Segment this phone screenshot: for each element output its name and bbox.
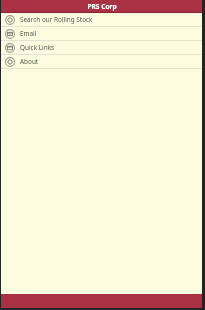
other: Email <box>5 29 15 39</box>
staticText: Email <box>20 29 37 38</box>
staticText: Quick Links <box>20 43 55 52</box>
other: Search <box>5 15 15 25</box>
button[interactable]: About <box>1 55 202 68</box>
other: About <box>5 57 15 67</box>
staticText: Search our Rolling Stock <box>20 15 93 24</box>
button[interactable]: Search <box>1 13 202 26</box>
staticText: PRS Corp <box>87 2 117 11</box>
button[interactable]: Quick Links <box>1 41 202 54</box>
staticText: About <box>20 57 39 66</box>
button[interactable]: Email <box>1 27 202 40</box>
other: Quick Links <box>5 43 15 53</box>
